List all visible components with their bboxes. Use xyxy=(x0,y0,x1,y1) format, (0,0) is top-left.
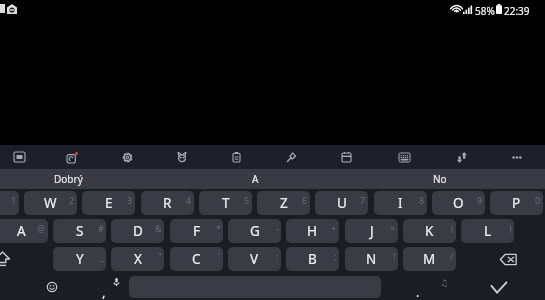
button[interactable]: More xyxy=(505,145,529,169)
button[interactable]: F xyxy=(170,219,223,243)
button[interactable]: L xyxy=(461,219,514,243)
staticText: O xyxy=(453,194,464,212)
button[interactable]: Q xyxy=(0,191,19,215)
button[interactable]: Themes xyxy=(170,145,194,169)
staticText: ) xyxy=(509,222,512,234)
button[interactable]: A xyxy=(0,219,48,243)
button[interactable]: Stickers xyxy=(60,145,84,169)
staticText: # xyxy=(98,222,104,234)
staticText: 8 xyxy=(419,194,425,206)
button[interactable]: Keyboard mode xyxy=(392,145,416,169)
button[interactable]: Comma xyxy=(88,276,130,298)
button[interactable]: C xyxy=(170,247,223,271)
staticText: N xyxy=(366,250,377,268)
button[interactable]: J xyxy=(345,219,398,243)
button[interactable]: B xyxy=(286,247,339,271)
button[interactable]: U xyxy=(315,191,368,215)
staticText: B xyxy=(308,250,317,268)
button[interactable]: V xyxy=(228,247,281,271)
staticText: E xyxy=(105,194,113,212)
staticText: T xyxy=(222,194,230,212)
button[interactable]: H xyxy=(286,219,339,243)
button[interactable]: K xyxy=(403,219,456,243)
button[interactable]: S xyxy=(53,219,106,243)
staticText: A xyxy=(252,172,259,186)
staticText: * xyxy=(216,222,221,234)
staticText: ; xyxy=(334,250,337,262)
button[interactable]: P xyxy=(490,191,543,215)
staticText: 22:39 xyxy=(504,4,530,18)
staticText: I xyxy=(398,194,403,212)
button[interactable]: T xyxy=(199,191,252,215)
staticText: 6 xyxy=(302,194,308,206)
staticText: + xyxy=(331,222,337,234)
button[interactable]: E xyxy=(82,191,135,215)
button[interactable]: D xyxy=(111,219,164,243)
button[interactable]: GIF xyxy=(7,145,31,169)
staticText: 2 xyxy=(69,194,75,206)
button[interactable]: Calendar xyxy=(334,145,358,169)
button[interactable]: Dobrý xyxy=(0,169,161,189)
button[interactable]: N xyxy=(345,247,398,271)
button[interactable]: I xyxy=(374,191,427,215)
staticText: G xyxy=(250,222,260,240)
button[interactable]: Enter xyxy=(478,276,520,298)
button[interactable]: Z xyxy=(257,191,310,215)
button[interactable]: A xyxy=(163,169,348,189)
button[interactable]: Clipboard xyxy=(224,145,248,169)
button[interactable]: Translate xyxy=(279,145,303,169)
staticText: ! xyxy=(393,250,396,262)
staticText: , xyxy=(102,283,106,300)
staticText: & xyxy=(155,222,162,234)
staticText: V xyxy=(250,250,259,268)
button[interactable]: X xyxy=(111,247,164,271)
staticText: = xyxy=(390,222,396,234)
button[interactable]: No xyxy=(347,169,532,189)
button[interactable]: Emoji xyxy=(36,276,67,298)
staticText: M xyxy=(423,250,436,268)
staticText: ( xyxy=(451,222,454,234)
staticText: / xyxy=(450,250,454,262)
button[interactable]: Settings xyxy=(115,145,139,169)
staticText: 58% xyxy=(475,4,495,18)
staticText: R xyxy=(163,194,172,212)
staticText: 1 xyxy=(11,194,17,206)
staticText: 0 xyxy=(535,194,541,206)
staticText: Dobrý xyxy=(54,172,83,186)
staticText: 5 xyxy=(244,194,250,206)
staticText: K xyxy=(425,222,434,240)
button[interactable]: W xyxy=(24,191,77,215)
staticText: . xyxy=(416,284,420,300)
button[interactable]: R xyxy=(141,191,194,215)
button[interactable]: Shift xyxy=(0,247,26,271)
button[interactable]: Period xyxy=(400,276,460,298)
staticText: C xyxy=(192,250,201,268)
staticText: 4 xyxy=(186,194,192,206)
staticText: 3 xyxy=(127,194,133,206)
button[interactable]: Backspace xyxy=(484,247,532,271)
staticText: No xyxy=(433,172,447,186)
staticText: @ xyxy=(37,222,46,234)
staticText: : xyxy=(276,250,279,262)
staticText: 7 xyxy=(360,194,366,206)
staticText: ♫ xyxy=(440,278,449,288)
staticText: L xyxy=(484,222,492,240)
staticText: S xyxy=(76,222,84,240)
staticText: - xyxy=(276,222,279,234)
staticText: J xyxy=(370,222,374,240)
staticText: ' xyxy=(218,250,221,262)
staticText: " xyxy=(158,250,162,262)
staticText: X xyxy=(134,250,142,268)
staticText: F xyxy=(193,222,201,240)
staticText: D xyxy=(133,222,143,240)
button[interactable]: G xyxy=(228,219,281,243)
button[interactable]: O xyxy=(432,191,485,215)
button[interactable]: Y xyxy=(53,247,106,271)
button[interactable]: M xyxy=(403,247,456,271)
staticText: _ xyxy=(100,250,104,262)
staticText: Z xyxy=(280,194,288,212)
staticText: Y xyxy=(76,250,84,268)
staticText: H xyxy=(307,222,318,240)
button[interactable]: Switch xyxy=(450,145,474,169)
